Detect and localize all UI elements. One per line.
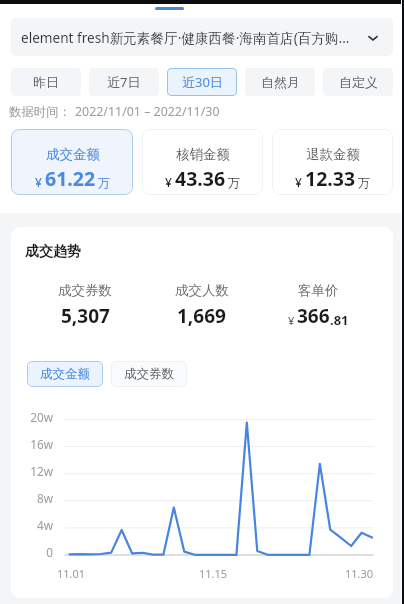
- staticText: 成交券数: [58, 282, 112, 299]
- button[interactable]: 退款金额: [272, 129, 393, 195]
- button[interactable]: element fresh新元素餐厅·健康西餐·海南首店(百方购...: [11, 18, 393, 56]
- staticText: ¥: [35, 174, 42, 190]
- staticText: ¥: [288, 313, 295, 328]
- staticText: 43.36: [175, 165, 226, 192]
- button[interactable]: 自定义: [323, 68, 393, 96]
- staticText: 11.01: [57, 566, 86, 581]
- staticText: 数据时间：: [9, 104, 71, 120]
- staticText: 万: [358, 175, 370, 190]
- staticText: 11.15: [199, 566, 228, 581]
- staticText: 成交金额: [40, 366, 90, 382]
- staticText: 核销金额: [176, 146, 230, 163]
- staticText: 成交金额: [46, 146, 100, 163]
- button[interactable]: 近7日: [89, 68, 159, 96]
- staticText: 5,307: [61, 303, 110, 329]
- staticText: 成交券数: [124, 366, 174, 382]
- staticText: 成交趋势: [25, 243, 81, 261]
- button[interactable]: 昨日: [11, 68, 81, 96]
- staticText: 61.22: [45, 165, 96, 192]
- staticText: .81: [330, 311, 349, 329]
- staticText: 近7日: [107, 73, 141, 91]
- staticText: 成交人数: [175, 282, 229, 299]
- button[interactable]: 成交金额: [11, 129, 133, 195]
- staticText: 11.30: [345, 566, 374, 581]
- staticText: 4w: [11, 517, 53, 533]
- button[interactable]: 近30日: [167, 68, 237, 96]
- button[interactable]: 自然月: [245, 68, 315, 96]
- staticText: 昨日: [33, 74, 59, 90]
- staticText: 万: [228, 175, 240, 190]
- staticText: 自定义: [339, 74, 378, 90]
- staticText: 12.33: [305, 165, 356, 192]
- button[interactable]: 成交金额: [27, 361, 103, 387]
- staticText: 16w: [11, 436, 53, 452]
- button[interactable]: 成交券数: [111, 361, 187, 387]
- staticText: 自然月: [261, 74, 300, 90]
- staticText: 万: [98, 175, 110, 190]
- staticText: 退款金额: [306, 146, 360, 163]
- staticText: 2022/11/01 – 2022/11/30: [75, 103, 220, 120]
- other: Expand: [367, 32, 379, 44]
- staticText: 客单价: [298, 282, 339, 299]
- staticText: ¥: [165, 174, 172, 190]
- staticText: 0: [11, 544, 53, 560]
- button[interactable]: 核销金额: [142, 129, 263, 195]
- staticText: 20w: [11, 409, 53, 425]
- staticText: ¥: [295, 174, 302, 190]
- staticText: 8w: [11, 490, 53, 506]
- staticText: 12w: [11, 463, 53, 479]
- staticText: element fresh新元素餐厅·健康西餐·海南首店(百方购...: [21, 28, 359, 47]
- staticText: 1,669: [177, 303, 226, 329]
- staticText: 366: [297, 303, 330, 329]
- staticText: 近30日: [182, 73, 223, 91]
